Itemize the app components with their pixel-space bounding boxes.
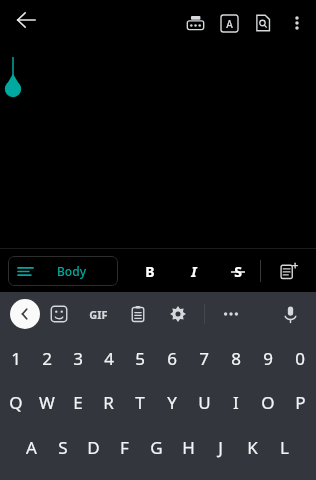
staticText: 3 (73, 347, 83, 370)
button[interactable]: 3 (62, 336, 93, 380)
staticText: 6 (167, 347, 177, 370)
button[interactable]: D (78, 425, 109, 470)
button[interactable]: 4 (93, 336, 124, 380)
button[interactable] (0, 46, 316, 248)
button[interactable]: Body (8, 256, 118, 286)
staticText: 4 (104, 347, 114, 370)
button[interactable]: J (204, 425, 236, 470)
button[interactable]: 5 (124, 336, 156, 380)
button[interactable]: GIF (78, 294, 118, 334)
staticText: 5 (135, 347, 145, 370)
button[interactable]: 2 (31, 336, 62, 380)
staticText: Body (57, 263, 86, 279)
staticText: 0 (295, 347, 305, 370)
button[interactable]: L (268, 425, 300, 470)
button[interactable]: A (16, 425, 47, 470)
button[interactable]: W (31, 380, 62, 425)
staticText: E (73, 391, 83, 414)
button[interactable]: Close toolbar (10, 299, 40, 329)
staticText: T (135, 391, 145, 414)
button[interactable]: Text formatting (212, 6, 246, 40)
button[interactable]: Find in note (246, 6, 280, 40)
button[interactable]: Q (0, 380, 31, 425)
button[interactable]: Italic (172, 251, 216, 291)
button[interactable]: 0 (284, 336, 316, 380)
button[interactable]: E (62, 380, 93, 425)
button[interactable]: S (47, 425, 78, 470)
button[interactable]: Navigate up (6, 0, 46, 40)
staticText: S (58, 436, 68, 459)
staticText: 7 (199, 347, 209, 370)
staticText: I (233, 391, 239, 414)
staticText: R (103, 391, 114, 414)
button[interactable]: H (172, 425, 204, 470)
button[interactable]: T (124, 380, 156, 425)
staticText: A (226, 17, 233, 31)
button[interactable]: Settings (158, 294, 198, 334)
staticText: Y (167, 391, 177, 414)
button[interactable]: Bold (128, 251, 172, 291)
staticText: L (280, 436, 289, 459)
button[interactable]: G (140, 425, 172, 470)
staticText: J (218, 436, 223, 459)
button[interactable]: 9 (252, 336, 284, 380)
staticText: F (120, 436, 129, 459)
staticText: O (261, 391, 275, 414)
staticText: W (39, 391, 55, 414)
staticText: D (87, 436, 100, 459)
staticText: S (234, 262, 242, 281)
button[interactable]: 6 (156, 336, 188, 380)
button[interactable]: O (252, 380, 284, 425)
staticText: P (295, 391, 306, 414)
staticText: GIF (89, 307, 108, 322)
button[interactable]: 1 (0, 336, 31, 380)
button[interactable]: U (188, 380, 220, 425)
staticText: K (247, 436, 258, 459)
button[interactable]: Stickers (40, 294, 78, 334)
staticText: G (150, 436, 163, 459)
staticText: 1 (11, 347, 21, 370)
button[interactable]: Strikethrough (216, 251, 260, 291)
button[interactable]: P (284, 380, 316, 425)
button[interactable]: 7 (188, 336, 220, 380)
button[interactable]: Y (156, 380, 188, 425)
staticText: 8 (231, 347, 241, 370)
button[interactable]: Voice input (268, 294, 312, 334)
button[interactable]: Undo history (178, 6, 212, 40)
button[interactable]: More options (280, 6, 314, 40)
button[interactable]: Clipboard (118, 294, 158, 334)
staticText: H (182, 436, 195, 459)
staticText: U (198, 391, 211, 414)
staticText: 2 (42, 347, 52, 370)
staticText: I (191, 262, 197, 281)
button[interactable]: R (93, 380, 124, 425)
button[interactable]: F (109, 425, 140, 470)
button[interactable]: I (220, 380, 252, 425)
button[interactable]: More keyboard options (211, 294, 251, 334)
staticText: 9 (263, 347, 273, 370)
button[interactable]: Insert checklist (261, 249, 316, 292)
button[interactable]: K (236, 425, 268, 470)
staticText: A (26, 436, 37, 459)
staticText: Q (9, 391, 23, 414)
button[interactable]: 8 (220, 336, 252, 380)
staticText: B (145, 262, 155, 281)
